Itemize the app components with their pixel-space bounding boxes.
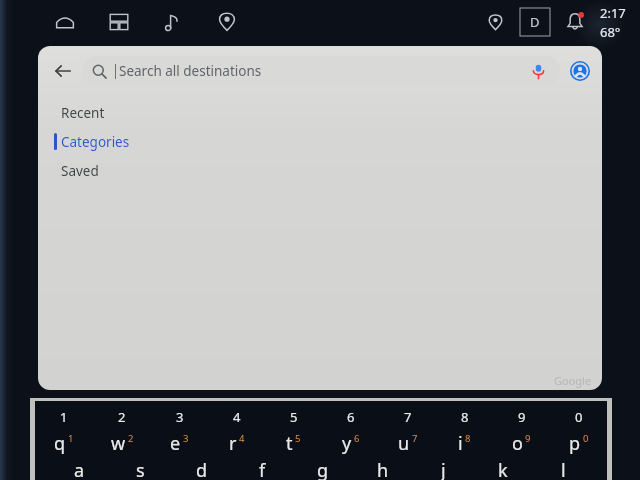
staticText: 9 bbox=[525, 432, 531, 445]
button[interactable]: 1 bbox=[35, 406, 93, 428]
button[interactable]: e bbox=[151, 428, 208, 458]
staticText: e bbox=[170, 431, 181, 456]
button[interactable]: Back bbox=[48, 56, 78, 86]
staticText: 8 bbox=[465, 432, 471, 445]
staticText: 6 bbox=[354, 432, 360, 445]
staticText: t bbox=[286, 431, 293, 456]
button[interactable]: t bbox=[265, 428, 322, 458]
button[interactable]: 5 bbox=[265, 406, 322, 428]
staticText: 4 bbox=[239, 432, 245, 445]
staticText: a bbox=[74, 458, 85, 480]
button[interactable]: Notifications bbox=[562, 9, 588, 35]
button[interactable]: Apps bbox=[106, 9, 132, 35]
staticText: k bbox=[498, 458, 508, 480]
button[interactable]: 2 bbox=[93, 406, 151, 428]
staticText: q bbox=[54, 431, 66, 456]
button[interactable]: o bbox=[493, 428, 550, 458]
staticText: u bbox=[398, 431, 410, 456]
staticText: Categories bbox=[61, 133, 130, 151]
staticText: Google bbox=[554, 373, 592, 388]
button[interactable]: f bbox=[232, 458, 293, 480]
button[interactable]: Drive mode bbox=[520, 8, 550, 36]
button[interactable]: r bbox=[208, 428, 265, 458]
button[interactable]: u bbox=[379, 428, 436, 458]
button[interactable]: k bbox=[473, 458, 533, 480]
button[interactable]: Navigation bbox=[214, 9, 240, 35]
button[interactable]: g bbox=[293, 458, 353, 480]
staticText: 7 bbox=[412, 432, 418, 445]
staticText: 2 bbox=[128, 432, 134, 445]
staticText: f bbox=[259, 458, 266, 480]
button[interactable]: i bbox=[436, 428, 493, 458]
staticText: 2 bbox=[118, 408, 126, 426]
button[interactable]: Saved bbox=[38, 156, 602, 185]
staticText: s bbox=[136, 458, 145, 480]
button[interactable]: d bbox=[171, 458, 232, 480]
staticText: 8 bbox=[461, 408, 469, 426]
staticText: h bbox=[377, 458, 389, 480]
button[interactable]: Search all destinations bbox=[82, 56, 560, 86]
button[interactable]: s bbox=[110, 458, 171, 480]
staticText: j bbox=[441, 458, 446, 480]
button[interactable]: j bbox=[413, 458, 473, 480]
button[interactable]: Home bbox=[52, 9, 78, 35]
staticText: 0 bbox=[575, 408, 583, 426]
staticText: Saved bbox=[61, 162, 99, 180]
button[interactable]: a bbox=[49, 458, 110, 480]
staticText: o bbox=[512, 431, 523, 456]
button[interactable]: 8 bbox=[436, 406, 493, 428]
button[interactable]: 0 bbox=[550, 406, 607, 428]
button[interactable]: 6 bbox=[322, 406, 379, 428]
staticText: d bbox=[196, 458, 208, 480]
button[interactable]: 9 bbox=[493, 406, 550, 428]
staticText: 5 bbox=[290, 408, 298, 426]
button[interactable]: 3 bbox=[151, 406, 208, 428]
staticText: i bbox=[458, 431, 463, 456]
staticText: D bbox=[530, 13, 540, 31]
button[interactable]: w bbox=[93, 428, 151, 458]
button[interactable]: 7 bbox=[379, 406, 436, 428]
button[interactable]: 4 bbox=[208, 406, 265, 428]
staticText: l bbox=[561, 458, 566, 480]
staticText: 1 bbox=[60, 408, 68, 426]
button[interactable]: Recent bbox=[38, 98, 602, 127]
button[interactable]: Account bbox=[568, 59, 592, 83]
staticText: r bbox=[229, 431, 237, 456]
button[interactable]: h bbox=[353, 458, 413, 480]
button[interactable]: Media bbox=[160, 9, 186, 35]
staticText: y bbox=[342, 431, 352, 456]
button[interactable]: Categories bbox=[38, 127, 602, 156]
staticText: Recent bbox=[61, 104, 105, 122]
staticText: 4 bbox=[233, 408, 241, 426]
button[interactable]: y bbox=[322, 428, 379, 458]
button[interactable]: Location bbox=[482, 9, 508, 35]
staticText: g bbox=[317, 458, 329, 480]
staticText: p bbox=[569, 431, 581, 456]
staticText: w bbox=[111, 431, 126, 456]
staticText: 3 bbox=[183, 432, 189, 445]
button[interactable]: Voice search bbox=[526, 59, 550, 83]
staticText: 6 bbox=[347, 408, 355, 426]
button[interactable]: l bbox=[533, 458, 593, 480]
staticText: 0 bbox=[583, 432, 589, 445]
staticText: 9 bbox=[518, 408, 526, 426]
staticText: Search all destinations bbox=[119, 62, 262, 80]
staticText: 3 bbox=[176, 408, 184, 426]
staticText: 7 bbox=[404, 408, 412, 426]
staticText: 68° bbox=[600, 23, 621, 41]
staticText: 5 bbox=[295, 432, 301, 445]
button[interactable]: p bbox=[550, 428, 607, 458]
button[interactable]: q bbox=[35, 428, 93, 458]
staticText: 1 bbox=[68, 432, 74, 445]
staticText: 2:17 bbox=[600, 4, 626, 22]
